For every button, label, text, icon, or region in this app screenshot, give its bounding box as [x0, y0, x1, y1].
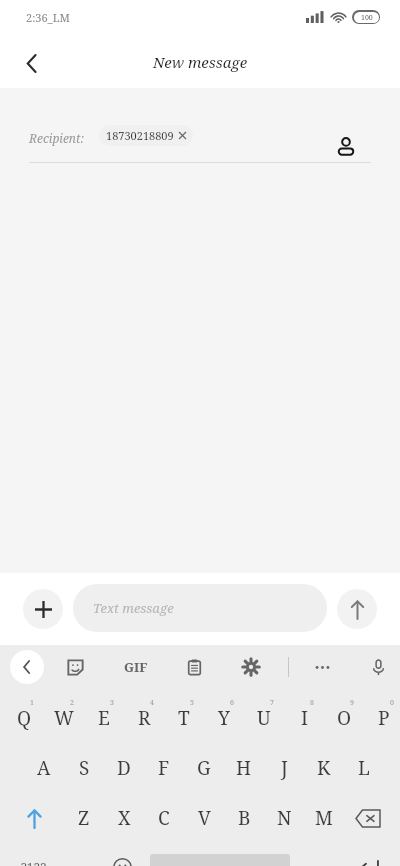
staticText: O — [337, 705, 352, 731]
staticText: 0 — [390, 698, 394, 708]
button[interactable]: W — [44, 695, 84, 741]
staticText: X — [118, 805, 131, 831]
button[interactable]: ?123 — [8, 845, 60, 866]
button[interactable]: N — [264, 795, 304, 841]
button[interactable]: Send — [337, 589, 377, 629]
button[interactable]: S — [64, 745, 104, 791]
staticText: J — [281, 755, 288, 781]
button[interactable]: P — [364, 695, 400, 741]
staticText: C — [158, 805, 170, 831]
button[interactable]: 18730218809 — [99, 125, 193, 146]
button[interactable]: B — [224, 795, 264, 841]
button[interactable]: M — [304, 795, 344, 841]
button[interactable]: Settings — [238, 654, 264, 680]
button[interactable]: Q — [4, 695, 44, 741]
staticText: Text message — [93, 599, 174, 617]
button[interactable]: Voice input — [365, 654, 391, 680]
staticText: G — [197, 755, 211, 781]
button[interactable]: L — [344, 745, 384, 791]
button[interactable]: A — [24, 745, 64, 791]
staticText: Z — [78, 805, 90, 831]
staticText: V — [198, 805, 211, 831]
button[interactable]: More options — [309, 654, 335, 680]
staticText: F — [158, 755, 170, 781]
staticText: 9 — [350, 698, 354, 708]
staticText: I — [301, 705, 308, 731]
staticText: P — [378, 705, 390, 731]
button[interactable]: Back — [12, 43, 52, 83]
staticText: U — [257, 705, 271, 731]
staticText: W — [54, 705, 74, 731]
button[interactable]: Emoji — [100, 845, 144, 866]
button[interactable]: Collapse toolbar — [10, 650, 44, 684]
staticText: Y — [218, 705, 230, 731]
button[interactable]: X — [104, 795, 144, 841]
staticText: 18730218809 — [106, 128, 174, 143]
button[interactable]: D — [104, 745, 144, 791]
staticText: T — [178, 705, 190, 731]
staticText: N — [277, 805, 292, 831]
button[interactable]: U — [244, 695, 284, 741]
staticText: 2:36_LM — [26, 10, 70, 25]
button[interactable]: Y — [204, 695, 244, 741]
staticText: A — [37, 755, 51, 781]
staticText: 6 — [230, 698, 234, 708]
staticText: GIF — [124, 658, 148, 676]
staticText: 1 — [30, 698, 34, 708]
button[interactable]: Shift — [12, 795, 56, 841]
staticText: New message — [0, 52, 400, 72]
button[interactable]: R — [124, 695, 164, 741]
staticText: R — [138, 705, 151, 731]
button[interactable]: T — [164, 695, 204, 741]
button[interactable]: Choose contact — [325, 126, 367, 168]
button[interactable]: O — [324, 695, 364, 741]
staticText: M — [315, 805, 333, 831]
staticText: 5 — [190, 698, 194, 708]
button[interactable]: Add attachment — [23, 589, 63, 629]
button[interactable]: G — [184, 745, 224, 791]
staticText: 4 — [150, 698, 154, 708]
button[interactable]: J — [264, 745, 304, 791]
staticText: 3 — [110, 698, 114, 708]
staticText: D — [117, 755, 131, 781]
button[interactable]: H — [224, 745, 264, 791]
button[interactable]: K — [304, 745, 344, 791]
button[interactable]: Enter — [344, 845, 392, 866]
button[interactable]: V — [184, 795, 224, 841]
staticText: Q — [17, 705, 32, 731]
staticText: 8 — [310, 698, 314, 708]
staticText: ?123 — [21, 859, 47, 866]
staticText: S — [79, 755, 90, 781]
staticText: B — [238, 805, 251, 831]
button[interactable]: GIF — [117, 655, 155, 679]
button[interactable]: F — [144, 745, 184, 791]
staticText: K — [317, 755, 331, 781]
button[interactable]: Text message — [73, 584, 327, 632]
staticText: E — [98, 705, 110, 731]
staticText: Recipient: — [29, 130, 84, 146]
button[interactable]: Backspace — [346, 795, 390, 841]
staticText: 2 — [70, 698, 74, 708]
staticText: H — [236, 755, 252, 781]
button[interactable]: E — [84, 695, 124, 741]
button[interactable]: I — [284, 695, 324, 741]
button[interactable]: Clipboard — [181, 654, 207, 680]
staticText: 100 — [361, 13, 373, 23]
button[interactable]: Z — [64, 795, 104, 841]
button[interactable]: C — [144, 795, 184, 841]
button[interactable]: Stickers — [62, 654, 88, 680]
staticText: 7 — [270, 698, 274, 708]
staticText: L — [358, 755, 370, 781]
